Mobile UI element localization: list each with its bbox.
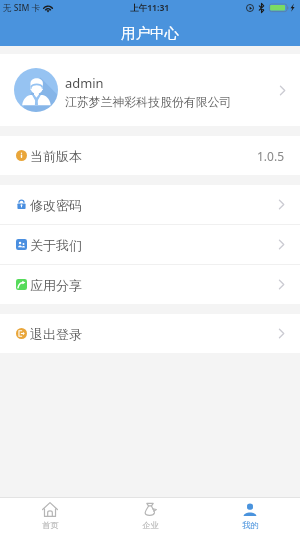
- staticText: 无 SIM 卡: [3, 2, 41, 14]
- staticText: 我的: [242, 520, 259, 530]
- staticText: 1.0.5: [257, 148, 285, 164]
- button[interactable]: 当前版本: [0, 136, 300, 175]
- staticText: 退出登录: [30, 326, 82, 342]
- staticText: 修改密码: [30, 197, 82, 213]
- button[interactable]: 应用分享: [0, 265, 300, 304]
- staticText: 用户中心: [121, 24, 179, 42]
- staticText: 当前版本: [30, 148, 82, 164]
- button[interactable]: 修改密码: [0, 185, 300, 224]
- button[interactable]: admin: [0, 54, 300, 126]
- staticText: 关于我们: [30, 237, 82, 253]
- staticText: 应用分享: [30, 277, 82, 293]
- button[interactable]: 退出登录: [0, 314, 300, 353]
- button[interactable]: 我的: [200, 502, 300, 530]
- button[interactable]: 关于我们: [0, 225, 300, 264]
- staticText: admin: [65, 74, 104, 92]
- button[interactable]: 企业: [100, 502, 200, 530]
- staticText: 首页: [42, 520, 59, 530]
- button[interactable]: 首页: [0, 502, 100, 530]
- staticText: 上午11:31: [130, 2, 170, 14]
- staticText: 企业: [142, 520, 159, 530]
- staticText: 江苏梦兰神彩科技股份有限公司: [65, 95, 232, 110]
